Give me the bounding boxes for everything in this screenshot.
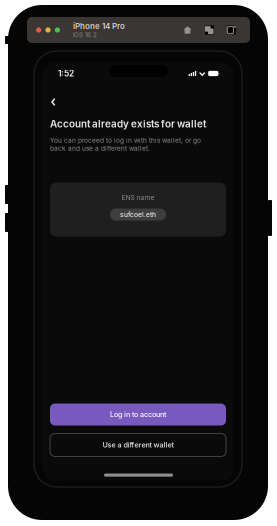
staticText: ENS name <box>121 193 154 202</box>
button[interactable]: Screenshot <box>205 25 214 34</box>
staticText: iPhone 14 Pro <box>73 21 125 31</box>
button[interactable]: Log in to account <box>50 403 226 425</box>
staticText: You can proceed to log in with this wall… <box>50 136 201 152</box>
staticText: Log in to account <box>110 410 166 419</box>
button[interactable]: Rotate <box>227 25 236 34</box>
staticText: Account already exists for wallet <box>50 118 206 130</box>
button[interactable]: Home <box>183 25 192 34</box>
button[interactable]: Use a different wallet <box>50 433 226 456</box>
staticText: 1:52 <box>58 68 74 78</box>
staticText: iOS 16.2 <box>73 31 97 39</box>
staticText: sufcoel.eth <box>120 210 156 219</box>
button[interactable]: Back <box>42 93 68 110</box>
staticText: Use a different wallet <box>102 441 173 449</box>
